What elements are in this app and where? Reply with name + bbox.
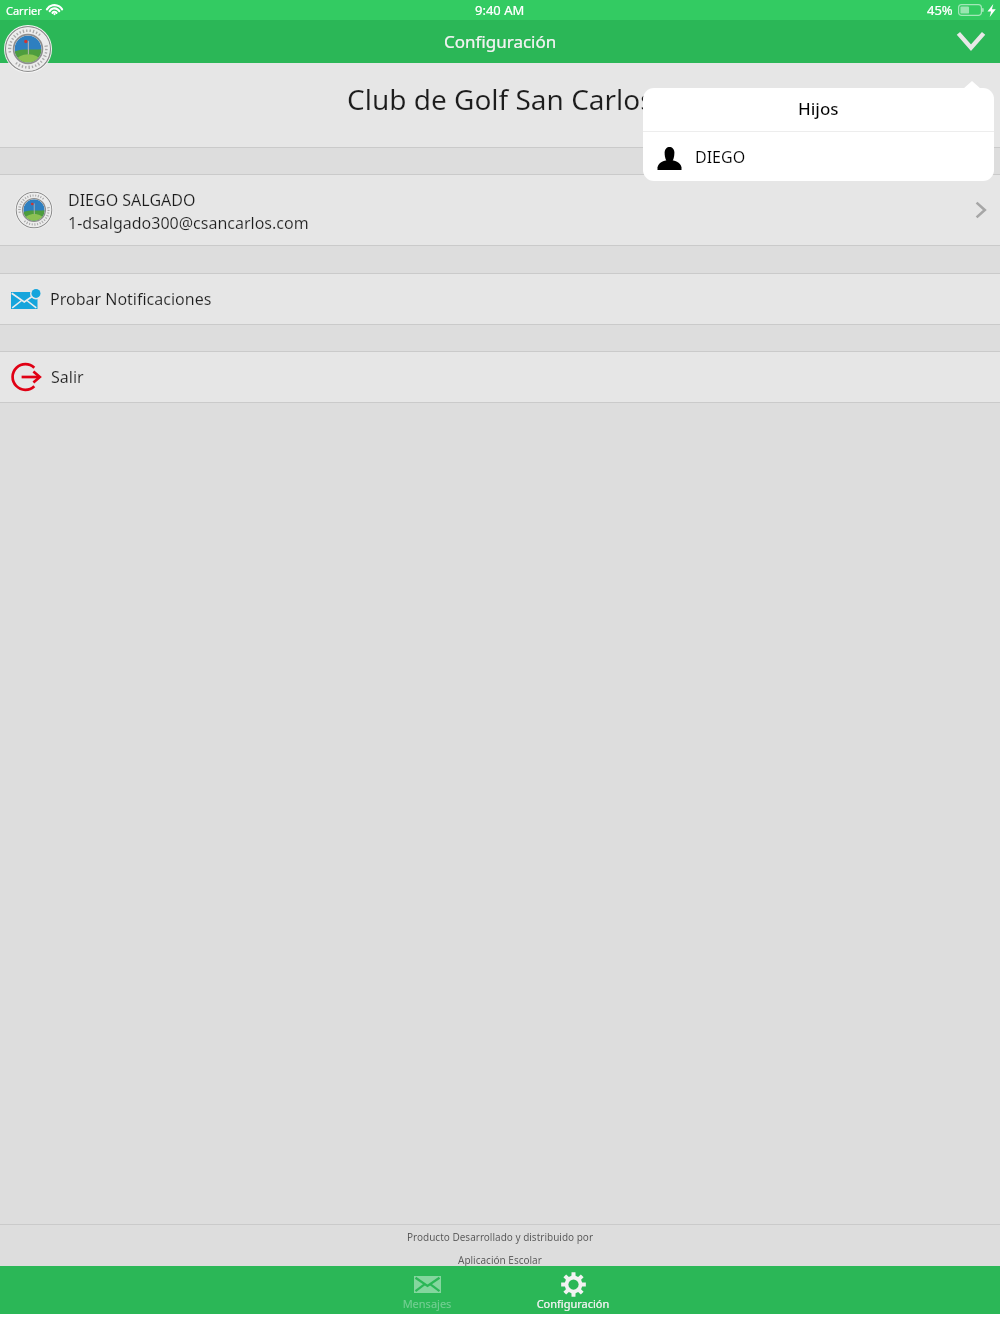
staticText: 45% — [927, 1, 953, 19]
staticText: Configuración — [444, 30, 557, 53]
staticText: Aplicación Escolar — [458, 1253, 542, 1267]
button[interactable]: Mensajes — [381, 1266, 473, 1314]
button[interactable]: Configuración — [527, 1266, 619, 1314]
button[interactable]: Salir — [0, 352, 1000, 402]
button[interactable]: Club de Golf San Carlos — [4, 25, 52, 73]
staticText: Salir — [51, 366, 84, 388]
staticText: Hijos — [798, 97, 839, 120]
staticText: Carrier — [6, 3, 42, 18]
staticText: Probar Notificaciones — [50, 288, 212, 310]
button[interactable]: Mostrar lista de hijos — [942, 20, 1000, 63]
button[interactable]: DIEGO — [643, 132, 994, 181]
button[interactable]: Probar Notificaciones — [0, 274, 1000, 324]
staticText: DIEGO — [695, 146, 746, 168]
staticText: 9:40 AM — [475, 1, 525, 19]
staticText: Club de Golf San Carlos — [347, 80, 654, 118]
staticText: Mensajes — [381, 1296, 473, 1311]
staticText: 1-dsalgado300@csancarlos.com — [68, 212, 309, 234]
button[interactable]: DIEGO SALGADO — [0, 175, 1000, 245]
staticText: Configuración — [527, 1296, 619, 1311]
staticText: Producto Desarrollado y distribuido por — [407, 1230, 594, 1244]
staticText: DIEGO SALGADO — [68, 189, 196, 211]
